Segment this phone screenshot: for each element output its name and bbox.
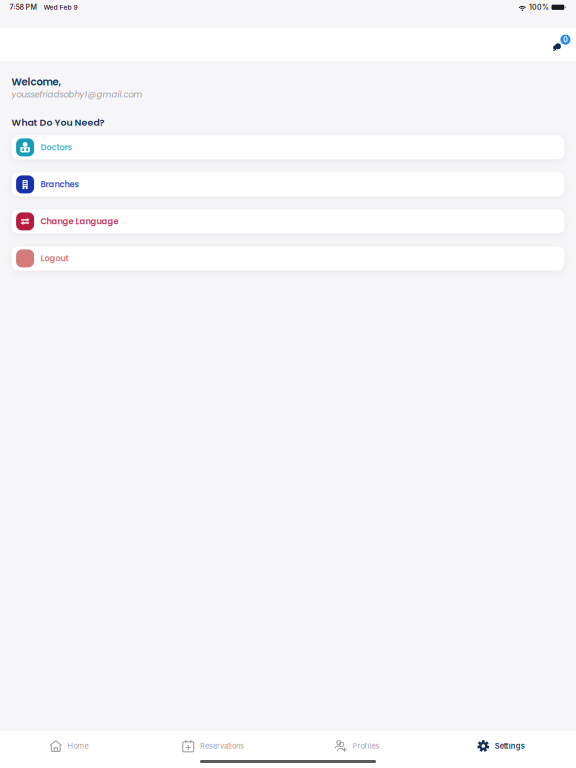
button[interactable]: Change Language [12, 209, 564, 233]
button[interactable]: Doctors [12, 135, 564, 159]
staticText: Reservations [200, 741, 244, 750]
button[interactable]: Home [0, 735, 144, 757]
staticText: 7:58 PM [10, 3, 37, 11]
button[interactable]: Profiles [288, 735, 432, 757]
staticText: Wed Feb 9 [44, 3, 78, 11]
staticText: Profiles [352, 741, 379, 750]
staticText: youssefriadsobhy1@gmail.com [12, 88, 143, 100]
staticText: What Do You Need? [12, 116, 105, 129]
staticText: 0 [563, 35, 568, 44]
staticText: Branches [41, 179, 80, 190]
button[interactable]: Messages [540, 34, 565, 55]
button[interactable]: Logout [12, 246, 564, 270]
button[interactable]: Branches [12, 172, 564, 196]
button[interactable]: Reservations [144, 735, 288, 757]
staticText: Doctors [41, 142, 73, 153]
staticText: Settings [495, 741, 525, 750]
button[interactable]: Settings [432, 735, 576, 757]
staticText: 100% [529, 3, 549, 11]
staticText: Logout [41, 253, 69, 264]
staticText: Welcome, [12, 75, 62, 89]
staticText: Change Language [41, 216, 119, 227]
staticText: Home [67, 741, 88, 750]
